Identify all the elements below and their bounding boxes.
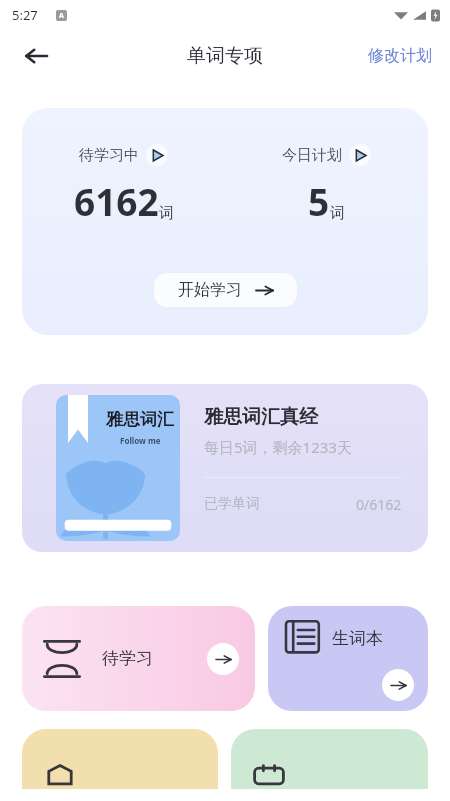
staticText: 雅思词汇真经 [204, 405, 318, 429]
staticText: 雅思词汇 [106, 409, 174, 430]
button[interactable]: 雅思词汇 [22, 384, 428, 552]
staticText: 已学单词 [204, 495, 260, 513]
staticText: A [59, 11, 64, 21]
staticText: 词 [330, 204, 345, 223]
button[interactable] [231, 729, 428, 789]
staticText: 6162 [74, 176, 159, 226]
button[interactable]: 生词本 [268, 606, 428, 711]
button[interactable]: Play 待学习中 [146, 144, 168, 166]
staticText: 待学习中 [79, 146, 139, 165]
staticText: 5:27 [12, 6, 38, 24]
staticText: 待学习 [102, 648, 153, 669]
staticText: 生词本 [332, 628, 383, 649]
button[interactable]: Back [14, 34, 58, 78]
staticText: 修改计划 [368, 46, 432, 66]
staticText: Follow me [120, 435, 161, 446]
button[interactable]: 待学习 [22, 606, 255, 711]
button[interactable]: Play 今日计划 [349, 144, 371, 166]
button[interactable] [22, 729, 218, 789]
staticText: 今日计划 [282, 146, 342, 165]
staticText: 开始学习 [178, 280, 242, 300]
staticText: 单词专项 [187, 44, 263, 68]
button[interactable]: 开始学习 [154, 273, 297, 307]
button[interactable]: Open [382, 669, 414, 701]
staticText: 0/6162 [356, 495, 402, 514]
staticText: 每日5词，剩余1233天 [204, 437, 352, 457]
button[interactable]: 待学习中 [22, 108, 428, 335]
staticText: 5 [308, 176, 330, 226]
staticText: 词 [159, 204, 174, 223]
button[interactable]: 修改计划 [360, 38, 440, 74]
button[interactable]: Open [207, 643, 239, 675]
